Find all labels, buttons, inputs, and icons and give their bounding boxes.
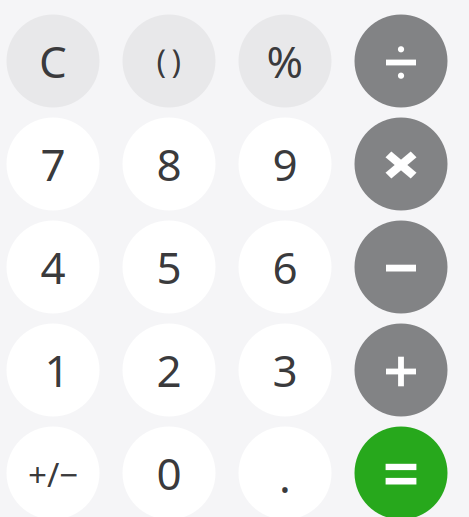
staticText: 6 <box>272 238 297 296</box>
button[interactable]: Equals <box>354 426 447 517</box>
button[interactable]: ( ) <box>122 14 215 107</box>
button[interactable]: 5 <box>122 220 215 313</box>
staticText: ( ) <box>156 40 181 82</box>
button[interactable]: Toggle sign <box>6 426 99 517</box>
button[interactable]: Divide <box>354 14 447 107</box>
staticText: C <box>39 32 67 90</box>
button[interactable]: 0 <box>122 426 215 517</box>
button[interactable]: 8 <box>122 117 215 210</box>
staticText: % <box>266 32 303 90</box>
button[interactable]: 9 <box>238 117 331 210</box>
button[interactable]: 2 <box>122 323 215 416</box>
button[interactable]: 1 <box>6 323 99 416</box>
staticText: +/− <box>28 452 78 496</box>
button[interactable]: C <box>6 14 99 107</box>
staticText: 9 <box>272 135 297 193</box>
staticText: 5 <box>156 238 181 296</box>
staticText: 8 <box>156 135 181 193</box>
staticText: 4 <box>40 238 65 296</box>
button[interactable]: 4 <box>6 220 99 313</box>
button[interactable]: 3 <box>238 323 331 416</box>
staticText: . <box>279 447 291 505</box>
button[interactable]: Multiply <box>354 117 447 210</box>
button[interactable]: 6 <box>238 220 331 313</box>
staticText: 0 <box>156 444 181 502</box>
button[interactable]: % <box>238 14 331 107</box>
staticText: 7 <box>40 135 65 193</box>
button[interactable]: Plus <box>354 323 447 416</box>
button[interactable]: 7 <box>6 117 99 210</box>
staticText: 2 <box>156 341 181 399</box>
button[interactable]: Decimal point <box>238 426 331 517</box>
button[interactable]: Minus <box>354 220 447 313</box>
staticText: 1 <box>44 341 69 399</box>
staticText: 3 <box>272 341 297 399</box>
